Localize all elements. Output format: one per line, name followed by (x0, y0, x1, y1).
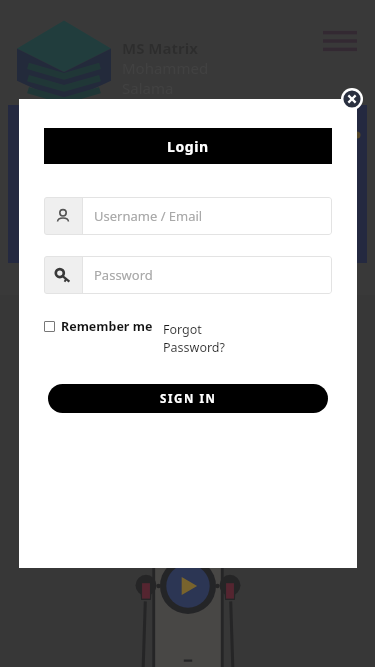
button[interactable]: SIGN IN (48, 384, 328, 413)
staticText: SIGN IN (160, 391, 217, 407)
button[interactable]: Username / Email (44, 197, 332, 235)
button[interactable]: Password (44, 256, 332, 294)
staticText: Remember me (61, 318, 153, 335)
button[interactable]: Forgot Password? (163, 321, 253, 356)
staticText: Password (94, 266, 153, 284)
staticText: Username / Email (94, 207, 203, 225)
staticText: MS Matrix (122, 38, 198, 58)
button[interactable]: Remember me (44, 318, 159, 335)
button[interactable]: Close (341, 88, 363, 110)
staticText: Forgot Password? (163, 321, 253, 356)
button[interactable]: Login (44, 128, 332, 164)
button[interactable]: Menu (323, 26, 357, 56)
staticText: Login (167, 137, 209, 156)
